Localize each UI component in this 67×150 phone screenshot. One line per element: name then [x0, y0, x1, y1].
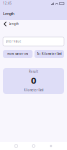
button[interactable]: Home [32, 145, 35, 147]
button[interactable]: To: Kilometer (km) [34, 50, 64, 58]
button[interactable]: From: Meter (m) [3, 50, 32, 58]
staticText: From: Meter (m) [7, 52, 28, 56]
button[interactable]: Length [0, 20, 67, 28]
staticText: 12:45 [3, 2, 12, 5]
staticText: Enter Value [5, 40, 21, 43]
staticText: 0 [31, 74, 36, 86]
staticText: Kilometer (km) [23, 88, 43, 92]
staticText: Length [3, 11, 14, 16]
staticText: To: Kilometer (km) [37, 52, 62, 56]
staticText: Length [9, 22, 19, 26]
staticText: Result [29, 70, 38, 73]
